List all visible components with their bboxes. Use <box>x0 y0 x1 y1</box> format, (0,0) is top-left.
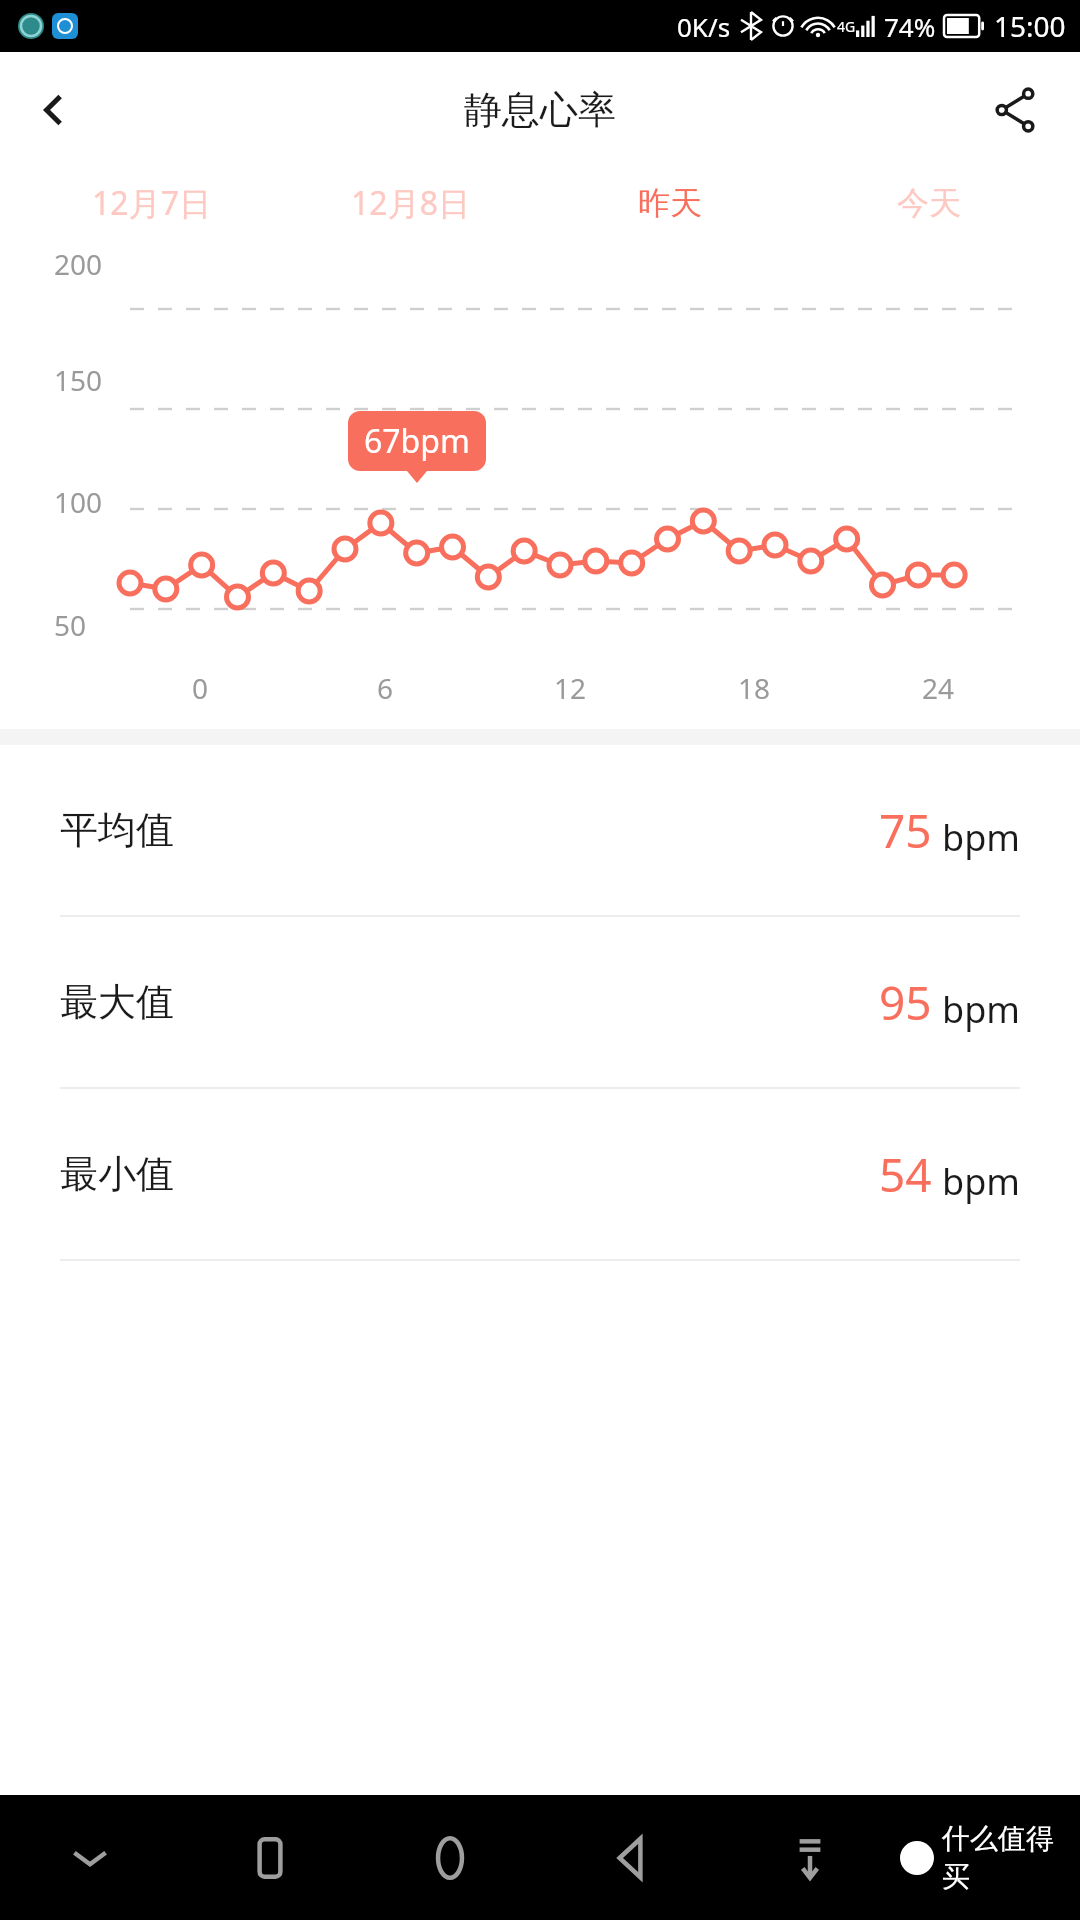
staticText: 54 <box>879 1143 932 1206</box>
staticText: 什么值得买 <box>942 1821 1056 1895</box>
button[interactable]: 最大值 <box>0 917 1080 1087</box>
staticText: 平均值 <box>60 806 174 854</box>
button[interactable]: 12月7日 <box>22 167 281 239</box>
staticText: 昨天 <box>638 183 702 223</box>
staticText: 静息心率 <box>464 86 616 134</box>
button[interactable]: Back <box>22 78 86 142</box>
button[interactable]: 12月8日 <box>281 167 540 239</box>
staticText: 4G <box>837 17 856 36</box>
button[interactable]: Collapse <box>0 1795 180 1920</box>
staticText: 15:00 <box>994 7 1066 45</box>
button[interactable]: Download <box>720 1795 900 1920</box>
button[interactable]: Share <box>980 75 1050 145</box>
staticText: bpm <box>942 1157 1020 1206</box>
staticText: bpm <box>942 813 1020 862</box>
staticText: 最大值 <box>60 978 174 1026</box>
button[interactable]: Recents <box>180 1795 360 1920</box>
staticText: 200 <box>54 245 103 283</box>
staticText: 今天 <box>897 183 961 223</box>
staticText: 74% <box>884 9 936 44</box>
button[interactable]: Back <box>540 1795 720 1920</box>
staticText: 18 <box>738 669 771 707</box>
button[interactable]: 平均值 <box>0 745 1080 915</box>
staticText: 6 <box>377 669 394 707</box>
staticText: 50 <box>54 606 87 644</box>
staticText: bpm <box>942 985 1020 1034</box>
staticText: 150 <box>54 361 103 399</box>
staticText: 24 <box>922 669 955 707</box>
button[interactable]: Home <box>360 1795 540 1920</box>
staticText: 最小值 <box>60 1150 174 1198</box>
staticText: 12月8日 <box>351 181 470 225</box>
staticText: 0 <box>192 669 209 707</box>
staticText: 100 <box>54 483 103 521</box>
button[interactable]: 最小值 <box>0 1089 1080 1259</box>
button[interactable]: 今天 <box>799 167 1058 239</box>
staticText: 95 <box>879 971 932 1034</box>
button[interactable]: 昨天 <box>540 167 799 239</box>
staticText: 12月7日 <box>92 181 211 225</box>
staticText: 0K/s <box>677 9 731 44</box>
staticText: 12 <box>554 669 587 707</box>
staticText: 67bpm <box>364 419 470 463</box>
staticText: 75 <box>879 799 932 862</box>
